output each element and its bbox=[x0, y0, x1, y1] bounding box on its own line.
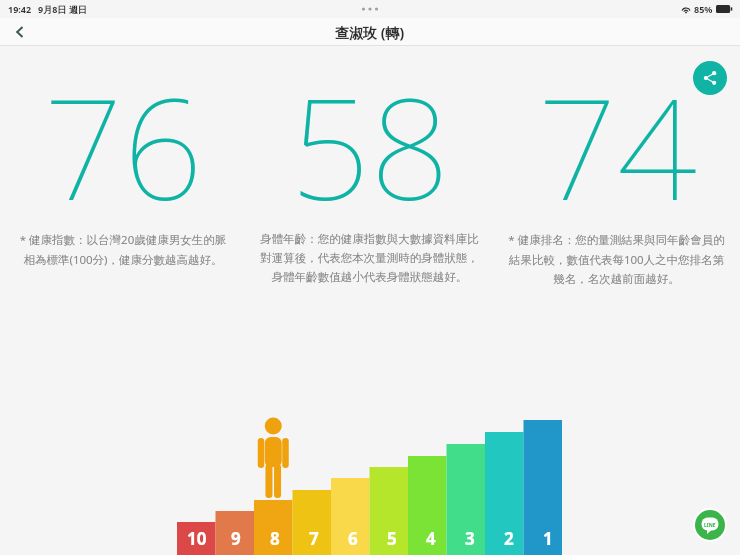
staticText: 9月8日 週日 bbox=[38, 3, 87, 15]
staticText: 74 bbox=[537, 50, 697, 215]
staticText: 10 bbox=[187, 527, 207, 550]
staticText: 4 bbox=[426, 527, 436, 550]
staticText: 76 bbox=[43, 50, 203, 215]
staticText: 8 bbox=[270, 527, 280, 550]
staticText: 6 bbox=[348, 527, 358, 550]
button[interactable]: Share to LINE bbox=[693, 508, 727, 542]
staticText: 85% bbox=[694, 3, 713, 15]
staticText: 2 bbox=[504, 527, 514, 550]
staticText: 查淑玫 (轉) bbox=[335, 23, 405, 42]
button[interactable]: Share bbox=[693, 61, 727, 95]
staticText: 7 bbox=[309, 527, 319, 550]
staticText: 3 bbox=[465, 527, 475, 550]
button[interactable]: Back bbox=[0, 18, 40, 46]
staticText: * 健康指數：以台灣20歲健康男女生的脈相為標準(100分)，健康分數越高越好。 bbox=[17, 232, 229, 267]
staticText: 身體年齡：您的健康指數與大數據資料庫比對運算後，代表您本次量測時的身體狀態，身體… bbox=[259, 232, 480, 285]
staticText: 1 bbox=[543, 527, 553, 550]
staticText: 19:42 bbox=[8, 3, 32, 15]
staticText: * 健康排名：您的量測結果與同年齡會員的結果比較，數值代表每100人之中您排名第… bbox=[507, 232, 726, 287]
staticText: 5 bbox=[387, 527, 397, 550]
staticText: 9 bbox=[231, 527, 241, 550]
staticText: 58 bbox=[290, 50, 450, 215]
staticText: LINE bbox=[704, 522, 716, 529]
